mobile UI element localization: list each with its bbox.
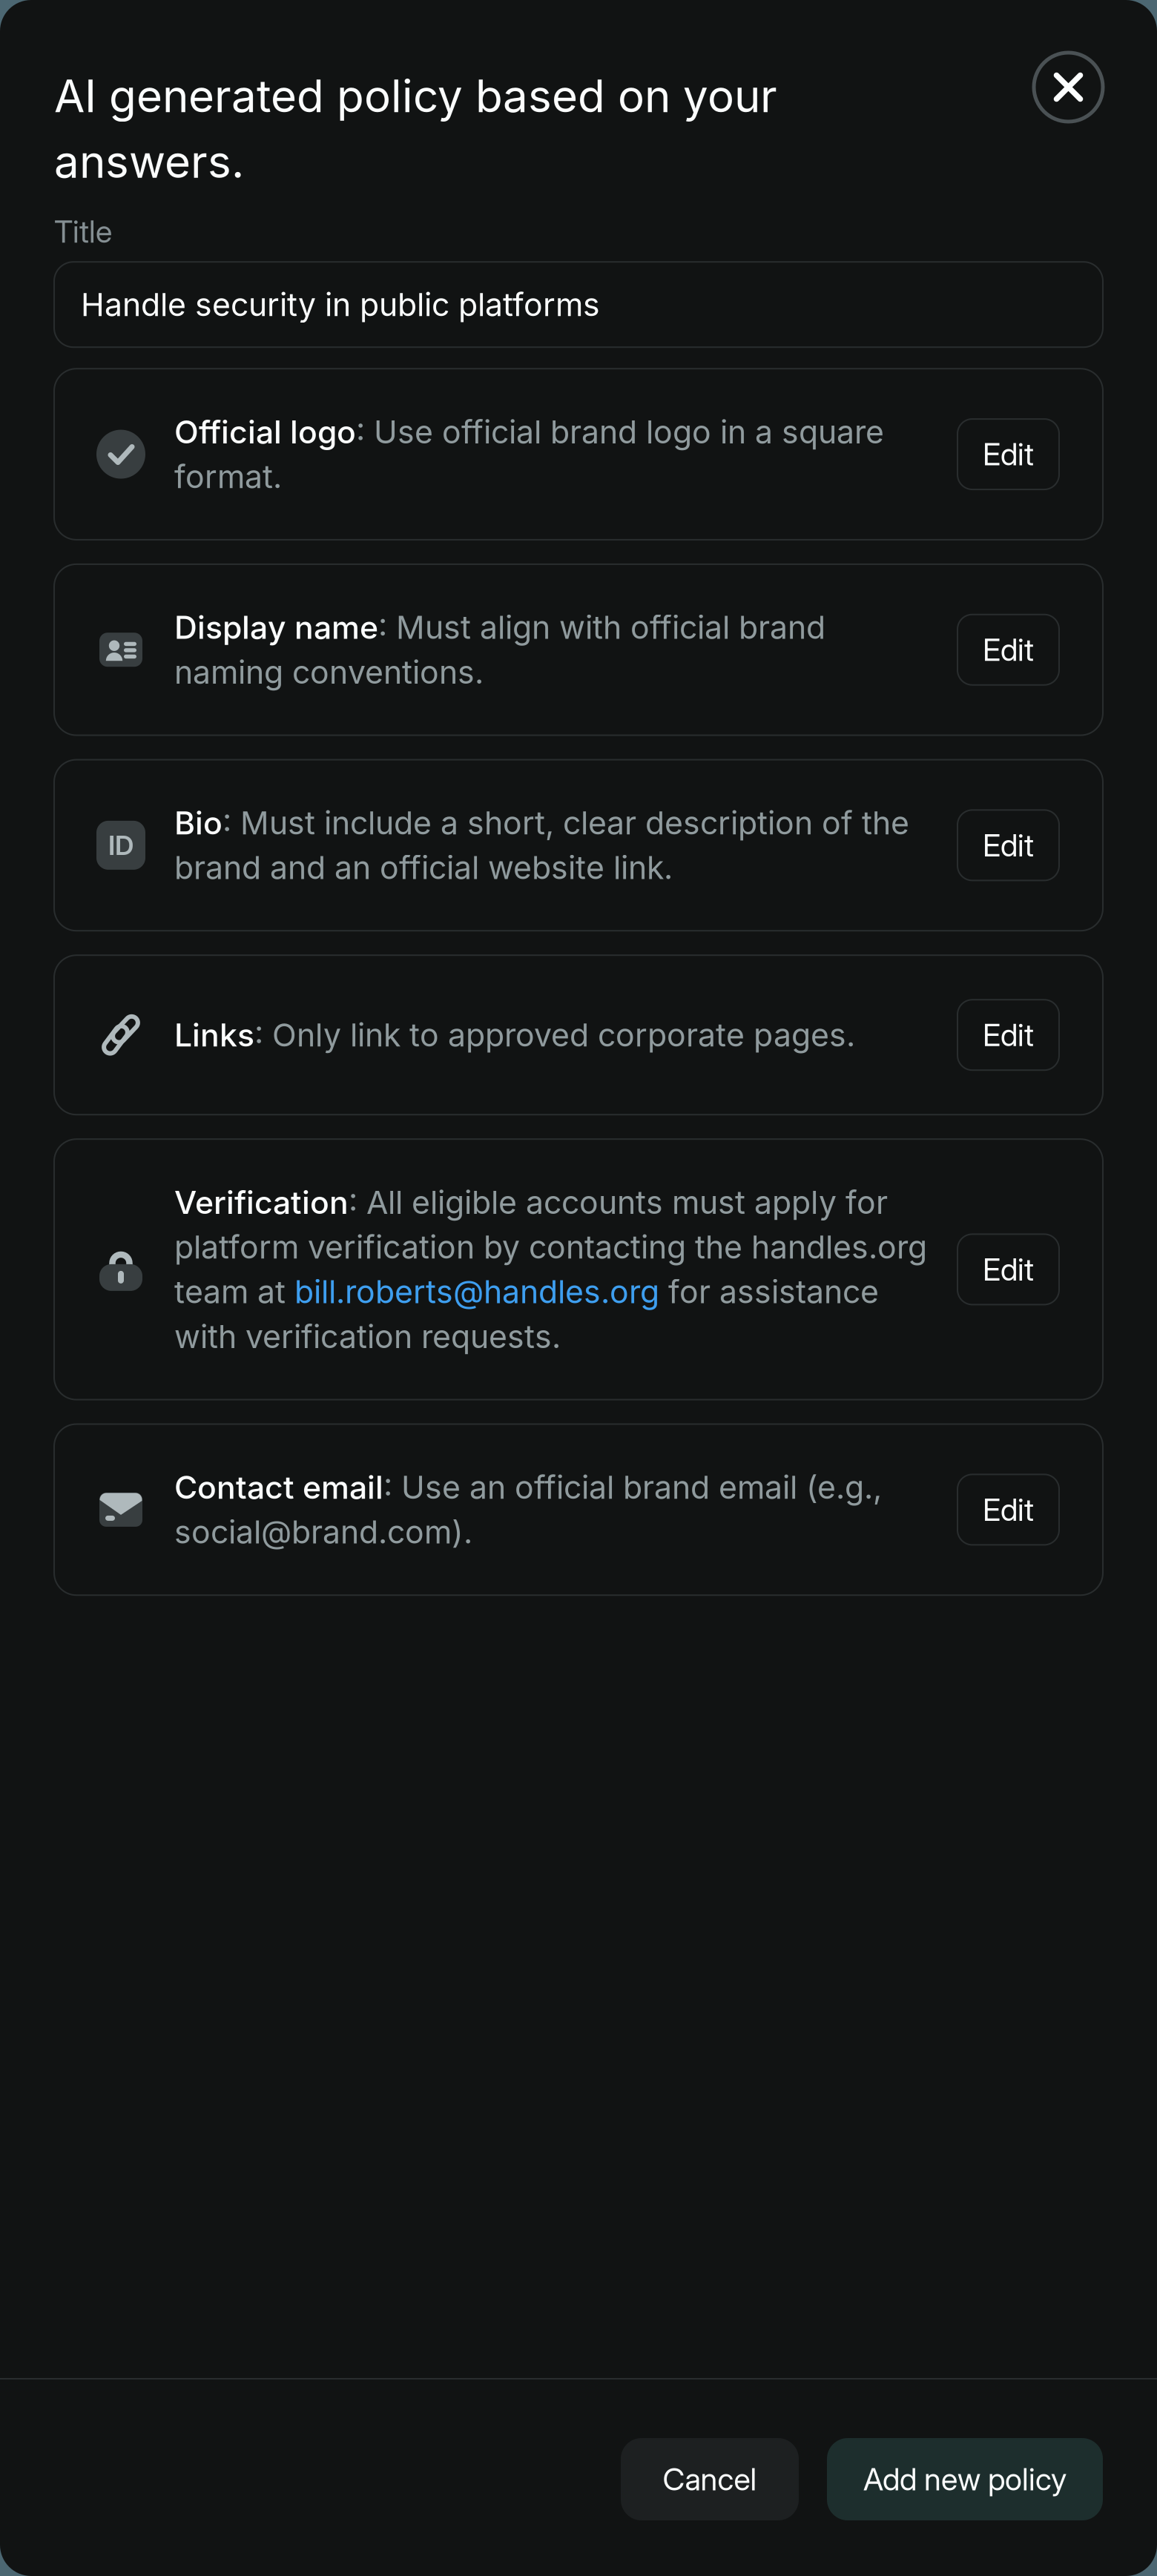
button[interactable]: Edit [957,1000,1059,1070]
button[interactable]: Edit [957,419,1059,489]
staticText: Edit [983,631,1034,668]
staticText: Edit [983,827,1034,864]
button[interactable]: Edit [957,1474,1059,1545]
staticText: ID [108,829,133,861]
staticText: Display name: Must align with official b… [174,609,825,691]
staticText: Bio: Must include a short, clear descrip… [174,804,909,886]
button[interactable]: Edit [957,810,1059,880]
button[interactable]: Edit [957,1234,1059,1305]
staticText: Contact email: Use an official brand ema… [174,1469,882,1551]
staticText: Edit [983,1251,1034,1288]
staticText: Add new policy [863,2461,1067,2498]
staticText: Handle security in public platforms [81,285,600,324]
button[interactable]: Add new policy [827,2438,1103,2520]
button[interactable]: Cancel [621,2438,799,2520]
staticText: Title [54,213,112,250]
staticText: Verification: All eligible accounts must… [174,1184,927,1355]
button[interactable]: Close [1034,53,1103,122]
staticText: Edit [983,436,1034,473]
staticText: Links: Only link to approved corporate p… [174,1016,855,1054]
staticText: Cancel [663,2461,757,2498]
staticText: Official logo: Use official brand logo i… [174,413,884,495]
staticText: AI generated policy based on your answer… [54,69,777,188]
staticText: Edit [983,1016,1034,1053]
button[interactable]: Edit [957,614,1059,685]
staticText: Edit [983,1491,1034,1528]
